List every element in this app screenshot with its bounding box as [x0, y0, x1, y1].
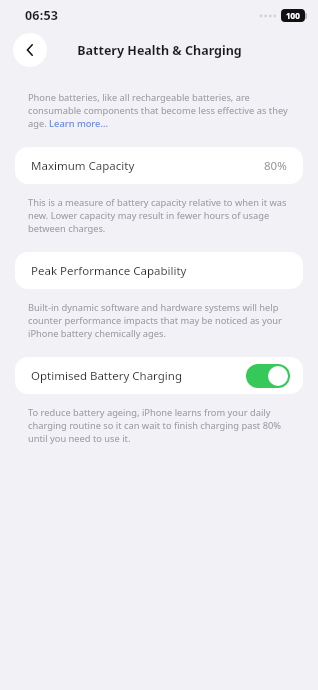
- staticText: Battery Health & Charging: [77, 42, 242, 59]
- staticText: 80%: [264, 158, 287, 174]
- button[interactable]: Back: [13, 33, 47, 67]
- staticText: This is a measure of battery capacity re…: [28, 196, 290, 235]
- staticText: Maximum Capacity: [31, 158, 135, 174]
- button[interactable]: Optimised Battery Charging toggle: [246, 364, 290, 388]
- button[interactable]: Optimised Battery Charging: [15, 357, 303, 394]
- staticText: Peak Performance Capability: [31, 263, 187, 279]
- staticText: 100: [286, 10, 300, 21]
- staticText: To reduce battery ageing, iPhone learns …: [28, 406, 290, 445]
- staticText: Built-in dynamic software and hardware s…: [28, 301, 290, 340]
- staticText: Optimised Battery Charging: [31, 368, 182, 384]
- button[interactable]: Peak Performance Capability: [15, 252, 303, 289]
- staticText: Phone batteries, like all rechargeable b…: [28, 91, 290, 130]
- button[interactable]: Maximum Capacity: [15, 147, 303, 184]
- staticText: 06:53: [25, 7, 59, 24]
